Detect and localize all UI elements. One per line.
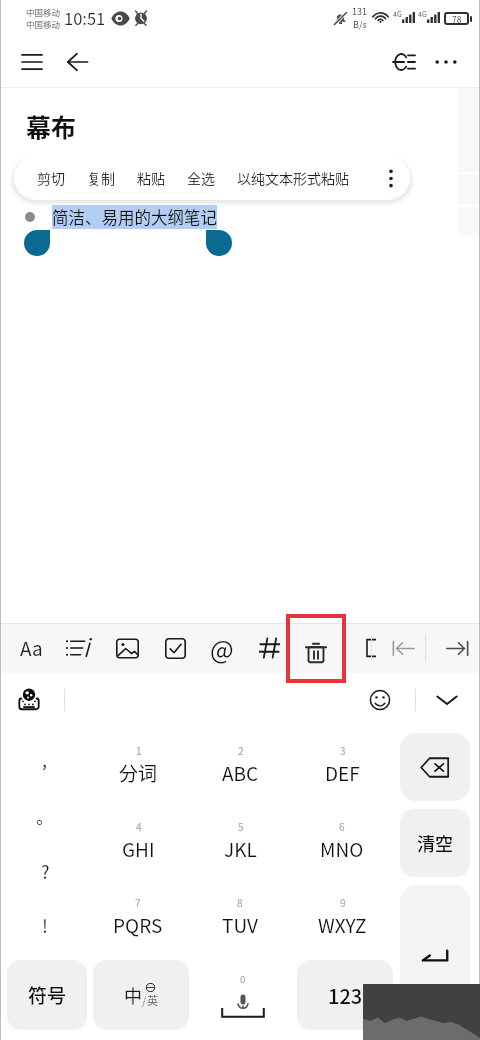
staticText: @: [210, 630, 234, 666]
staticText: 123: [328, 981, 363, 1010]
staticText: 8: [237, 895, 243, 909]
button[interactable]: Checkbox: [152, 623, 198, 673]
staticText: 分词: [119, 759, 158, 787]
staticText: 清空: [417, 830, 453, 856]
staticText: 以纯文本形式粘贴: [237, 168, 349, 188]
staticText: 剪切: [37, 168, 65, 188]
staticText: ABC: [222, 759, 259, 787]
staticText: JKL: [224, 835, 257, 863]
button[interactable]: Emoji: [361, 681, 399, 719]
staticText: 复制: [87, 168, 115, 188]
button[interactable]: Space and voice input: [195, 960, 291, 1030]
staticText: 78: [452, 13, 462, 25]
staticText: GHI: [122, 835, 155, 863]
staticText: 4: [136, 819, 142, 833]
staticText: 131: [352, 5, 367, 18]
button[interactable]: !: [24, 890, 66, 960]
button[interactable]: Menu: [12, 42, 52, 82]
staticText: WXYZ: [318, 911, 367, 939]
staticText: 英: [147, 992, 158, 1008]
button[interactable]: Backspace: [400, 733, 470, 801]
button[interactable]: 符号: [7, 960, 87, 1030]
button[interactable]: 。: [24, 781, 66, 851]
button[interactable]: Input method settings: [10, 681, 48, 719]
staticText: 简洁、易用的大纲笔记: [52, 205, 217, 229]
button[interactable]: ?: [24, 836, 66, 906]
button[interactable]: Bracket: [348, 623, 394, 673]
button[interactable]: 5: [190, 803, 290, 879]
button[interactable]: Enter: [400, 885, 470, 1027]
staticText: 幕布: [26, 108, 77, 144]
staticText: 1: [136, 743, 142, 757]
staticText: 中国移动: [26, 18, 61, 30]
staticText: 7: [135, 895, 141, 909]
button[interactable]: 剪切: [26, 168, 76, 188]
button[interactable]: 1: [88, 727, 188, 803]
staticText: 4G: [418, 9, 427, 19]
button[interactable]: Tag: [247, 623, 293, 673]
staticText: 3: [340, 743, 346, 757]
staticText: 中: [124, 982, 142, 1008]
staticText: 2: [238, 743, 244, 757]
button[interactable]: 粘贴: [126, 168, 176, 188]
staticText: ?: [41, 858, 50, 884]
button[interactable]: 9: [292, 879, 392, 955]
button[interactable]: More options: [378, 165, 404, 191]
staticText: MNO: [320, 835, 364, 863]
button[interactable]: Outdent: [380, 623, 426, 673]
button[interactable]: 4: [88, 803, 188, 879]
button[interactable]: Mention: [199, 623, 245, 673]
button[interactable]: 123: [297, 960, 393, 1030]
staticText: 6: [339, 819, 345, 833]
button[interactable]: ,: [24, 724, 66, 794]
button[interactable]: Delete: [286, 623, 346, 673]
staticText: ,: [42, 746, 48, 772]
staticText: 4G: [393, 9, 402, 19]
staticText: 粘贴: [137, 168, 165, 188]
button[interactable]: More: [426, 42, 466, 82]
button[interactable]: 以纯文本形式粘贴: [226, 168, 360, 188]
staticText: 0: [240, 972, 246, 986]
staticText: TUV: [222, 911, 258, 939]
staticText: 全选: [187, 168, 215, 188]
button[interactable]: 3: [292, 727, 392, 803]
button[interactable]: Hide keyboard: [428, 681, 466, 719]
staticText: !: [42, 912, 48, 938]
staticText: PQRS: [113, 911, 163, 939]
button[interactable]: 6: [292, 803, 392, 879]
staticText: 5: [238, 819, 244, 833]
staticText: /: [142, 992, 147, 1008]
staticText: 符号: [28, 981, 67, 1009]
button[interactable]: 复制: [76, 168, 126, 188]
button[interactable]: Switch Chinese English: [93, 960, 189, 1030]
button[interactable]: Back: [57, 42, 97, 82]
button[interactable]: 全选: [176, 168, 226, 188]
staticText: 。: [36, 803, 54, 829]
button[interactable]: 7: [88, 879, 188, 955]
button[interactable]: Bullet list: [56, 623, 102, 673]
staticText: 10:51: [64, 6, 106, 30]
button[interactable]: Image: [104, 623, 150, 673]
staticText: B/s: [353, 18, 367, 31]
button[interactable]: 8: [190, 879, 290, 955]
staticText: 中国移动: [26, 6, 61, 18]
staticText: DEF: [325, 759, 360, 787]
button[interactable]: 2: [190, 727, 290, 803]
button[interactable]: Outline view: [384, 42, 424, 82]
staticText: Aa: [20, 634, 43, 662]
button[interactable]: Text style: [8, 623, 54, 673]
button[interactable]: Indent: [434, 623, 480, 673]
button[interactable]: 清空: [400, 809, 470, 877]
staticText: 9: [340, 895, 346, 909]
